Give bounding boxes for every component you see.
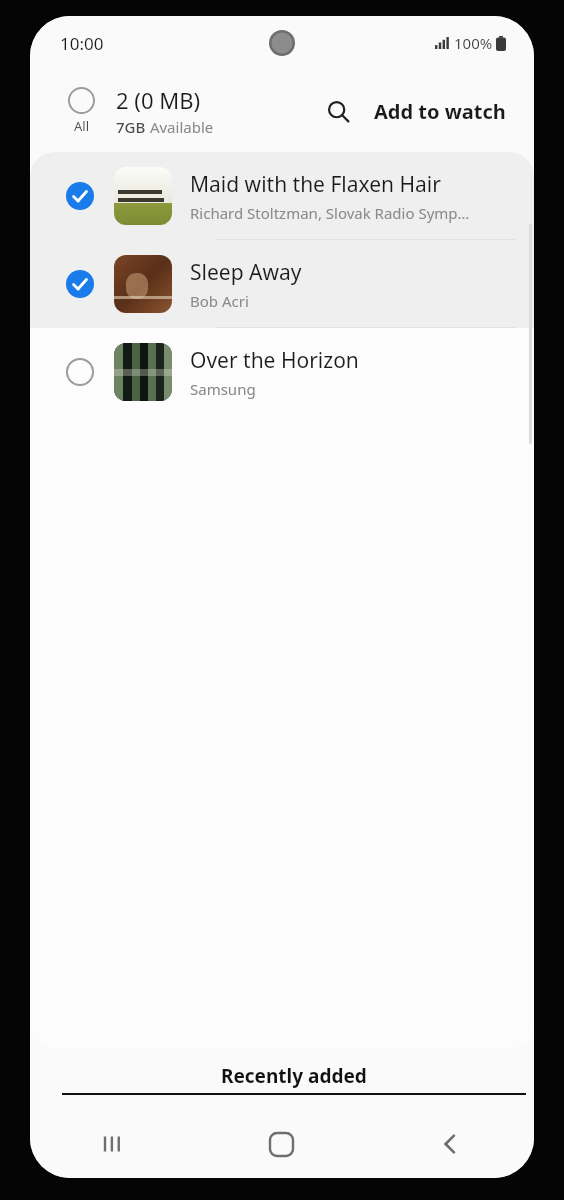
button[interactable]: Recently added [54,1057,534,1101]
button[interactable]: Add to watch [360,88,520,135]
staticText: All [74,117,90,135]
staticText: Recently added [221,1063,367,1089]
staticText: 7GB [116,117,146,137]
button[interactable]: Recents [87,1117,141,1171]
button[interactable]: Home [254,1117,309,1172]
button[interactable]: Maid with the Flaxen Hair [30,152,534,240]
staticText: Over the Horizon [190,346,359,375]
button[interactable]: All [64,83,99,139]
button[interactable]: Sleep Away [30,240,534,328]
staticText: Sleep Away [190,258,302,287]
staticText: Bob Acri [190,291,249,311]
staticText: Samsung [190,379,256,399]
staticText: Add to watch [374,98,506,125]
button[interactable]: Over the Horizon [30,328,534,416]
button[interactable]: Back [423,1117,477,1171]
button[interactable]: Search [317,90,360,133]
staticText: 100% [454,33,493,53]
staticText: Available [146,117,214,137]
staticText: Maid with the Flaxen Hair [190,170,441,199]
staticText: 10:00 [60,32,104,55]
staticText: Richard Stoltzman, Slovak Radio Symp… [190,203,470,223]
staticText: 2 (0 MB) [116,85,201,115]
